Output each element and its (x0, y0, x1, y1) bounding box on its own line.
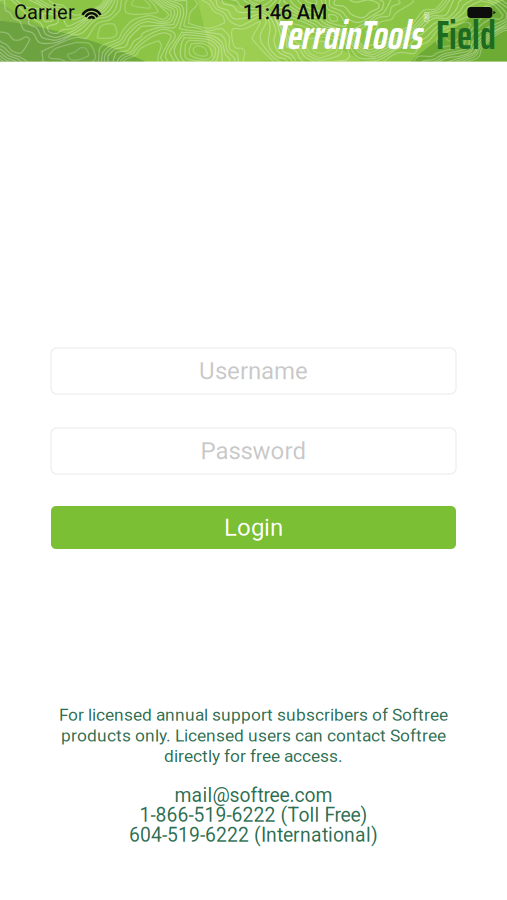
staticText: For licensed annual support subscribers … (59, 704, 448, 725)
button[interactable]: Login (51, 506, 456, 549)
staticText: 604-519-6222 (International) (129, 825, 378, 845)
staticText: Password (200, 437, 306, 465)
button[interactable]: Password (51, 428, 456, 474)
staticText: ® (423, 6, 430, 27)
staticText: Login (224, 513, 283, 541)
staticText: directly for free access. (164, 746, 343, 766)
staticText: 1-866-519-6222 (Toll Free) (139, 805, 367, 825)
button[interactable]: Username (51, 348, 456, 394)
staticText: mail@softree.com (174, 785, 332, 805)
staticText: Username (199, 357, 308, 385)
staticText: Field (430, 3, 496, 66)
staticText: Carrier (14, 1, 75, 24)
staticText: products only. Licensed users can contac… (61, 725, 446, 746)
staticText: TerrainTools (276, 3, 423, 66)
staticText: 11:46 AM (243, 1, 327, 24)
